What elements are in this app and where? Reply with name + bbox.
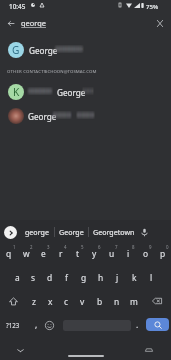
staticText: b xyxy=(97,296,103,307)
button[interactable]: , xyxy=(28,313,44,337)
button[interactable]: . xyxy=(131,313,144,337)
button[interactable]: 8 xyxy=(120,242,137,265)
staticText: i xyxy=(127,248,130,259)
staticText: K xyxy=(13,85,20,99)
staticText: 2 xyxy=(30,244,33,250)
button[interactable]: 0 xyxy=(154,242,171,265)
button[interactable]: h xyxy=(92,265,109,289)
staticText: n xyxy=(114,296,120,307)
staticText: w xyxy=(23,248,30,259)
button[interactable]: g xyxy=(75,265,92,289)
button[interactable]: ?123 xyxy=(0,313,26,337)
button[interactable]: 6 xyxy=(86,242,103,265)
staticText: ?123 xyxy=(6,321,20,329)
staticText: m xyxy=(130,296,138,307)
button[interactable]: Backspace xyxy=(142,289,171,313)
staticText: , xyxy=(35,319,38,330)
staticText: f xyxy=(65,272,68,283)
button[interactable]: Shift xyxy=(0,289,26,313)
button[interactable]: George xyxy=(0,102,171,130)
button[interactable]: x xyxy=(42,289,58,313)
staticText: 8 xyxy=(132,244,135,250)
staticText: l xyxy=(150,272,153,283)
staticText: . xyxy=(136,319,139,330)
button[interactable]: f xyxy=(58,265,75,289)
staticText: 0 xyxy=(166,244,169,250)
button[interactable]: k xyxy=(126,265,143,289)
button[interactable]: b xyxy=(91,289,108,313)
button[interactable]: Hide keyboard xyxy=(12,342,29,359)
button[interactable]: j xyxy=(109,265,126,289)
button[interactable]: More suggestions xyxy=(4,226,17,239)
staticText: Georgetown xyxy=(93,227,135,237)
staticText: George xyxy=(28,111,57,122)
staticText: o xyxy=(143,248,149,259)
button[interactable]: Switch keyboard xyxy=(140,341,157,358)
button[interactable]: Clear search xyxy=(151,15,168,32)
staticText: 10:45 xyxy=(9,2,26,11)
button[interactable]: c xyxy=(58,289,74,313)
staticText: OTHER CONTACTS xyxy=(7,68,47,74)
staticText: e xyxy=(41,248,46,259)
button[interactable]: z xyxy=(26,289,42,313)
button[interactable]: m xyxy=(125,289,142,313)
button[interactable]: Emoji xyxy=(41,313,57,337)
staticText: y xyxy=(92,248,97,259)
staticText: 3 xyxy=(47,244,50,250)
button[interactable]: s xyxy=(25,265,41,289)
staticText: 6 xyxy=(98,244,101,250)
button[interactable]: 2 xyxy=(18,242,35,265)
staticText: George xyxy=(57,87,86,98)
staticText: george xyxy=(25,227,49,237)
staticText: 5 xyxy=(81,244,84,250)
staticText: 7 xyxy=(115,244,118,250)
button[interactable]: Georgetown xyxy=(89,220,139,244)
button[interactable]: d xyxy=(41,265,58,289)
staticText: v xyxy=(80,296,85,307)
staticText: u xyxy=(109,248,115,259)
button[interactable]: Back xyxy=(2,15,19,32)
staticText: p xyxy=(160,248,166,259)
staticText: r xyxy=(59,248,63,259)
button[interactable]: v xyxy=(74,289,91,313)
button[interactable]: george xyxy=(19,220,54,244)
staticText: george xyxy=(21,18,46,28)
staticText: z xyxy=(32,296,36,307)
staticText: G xyxy=(12,43,20,57)
button[interactable]: 3 xyxy=(35,242,52,265)
staticText: g xyxy=(81,272,87,283)
staticText: t xyxy=(76,248,80,259)
button[interactable]: 9 xyxy=(137,242,154,265)
button[interactable]: 4 xyxy=(52,242,69,265)
staticText: h xyxy=(98,272,104,283)
button[interactable]: 7 xyxy=(103,242,120,265)
button[interactable]: Search xyxy=(146,318,169,331)
button[interactable]: 1 xyxy=(0,242,18,265)
staticText: 9 xyxy=(149,244,152,250)
staticText: George xyxy=(29,45,58,56)
staticText: s xyxy=(31,272,36,283)
button[interactable]: K xyxy=(0,78,171,106)
staticText: x xyxy=(48,296,53,307)
staticText: j xyxy=(116,272,119,283)
staticText: k xyxy=(132,272,137,283)
staticText: d xyxy=(47,272,53,283)
button[interactable]: n xyxy=(108,289,125,313)
button[interactable]: l xyxy=(143,265,160,289)
button[interactable]: 5 xyxy=(69,242,86,265)
staticText: 4 xyxy=(64,244,67,250)
staticText: c xyxy=(64,296,69,307)
staticText: 1 xyxy=(13,244,16,250)
staticText: 75% xyxy=(146,2,159,10)
button[interactable]: George xyxy=(55,220,88,244)
staticText: q xyxy=(6,248,12,259)
staticText: a xyxy=(15,272,20,283)
staticText: SCHOON@TOSMAC.COM xyxy=(45,68,97,74)
staticText: George xyxy=(59,227,84,237)
button[interactable]: Voice input xyxy=(136,220,153,244)
button[interactable]: a xyxy=(9,265,25,289)
button[interactable]: G xyxy=(0,36,171,64)
